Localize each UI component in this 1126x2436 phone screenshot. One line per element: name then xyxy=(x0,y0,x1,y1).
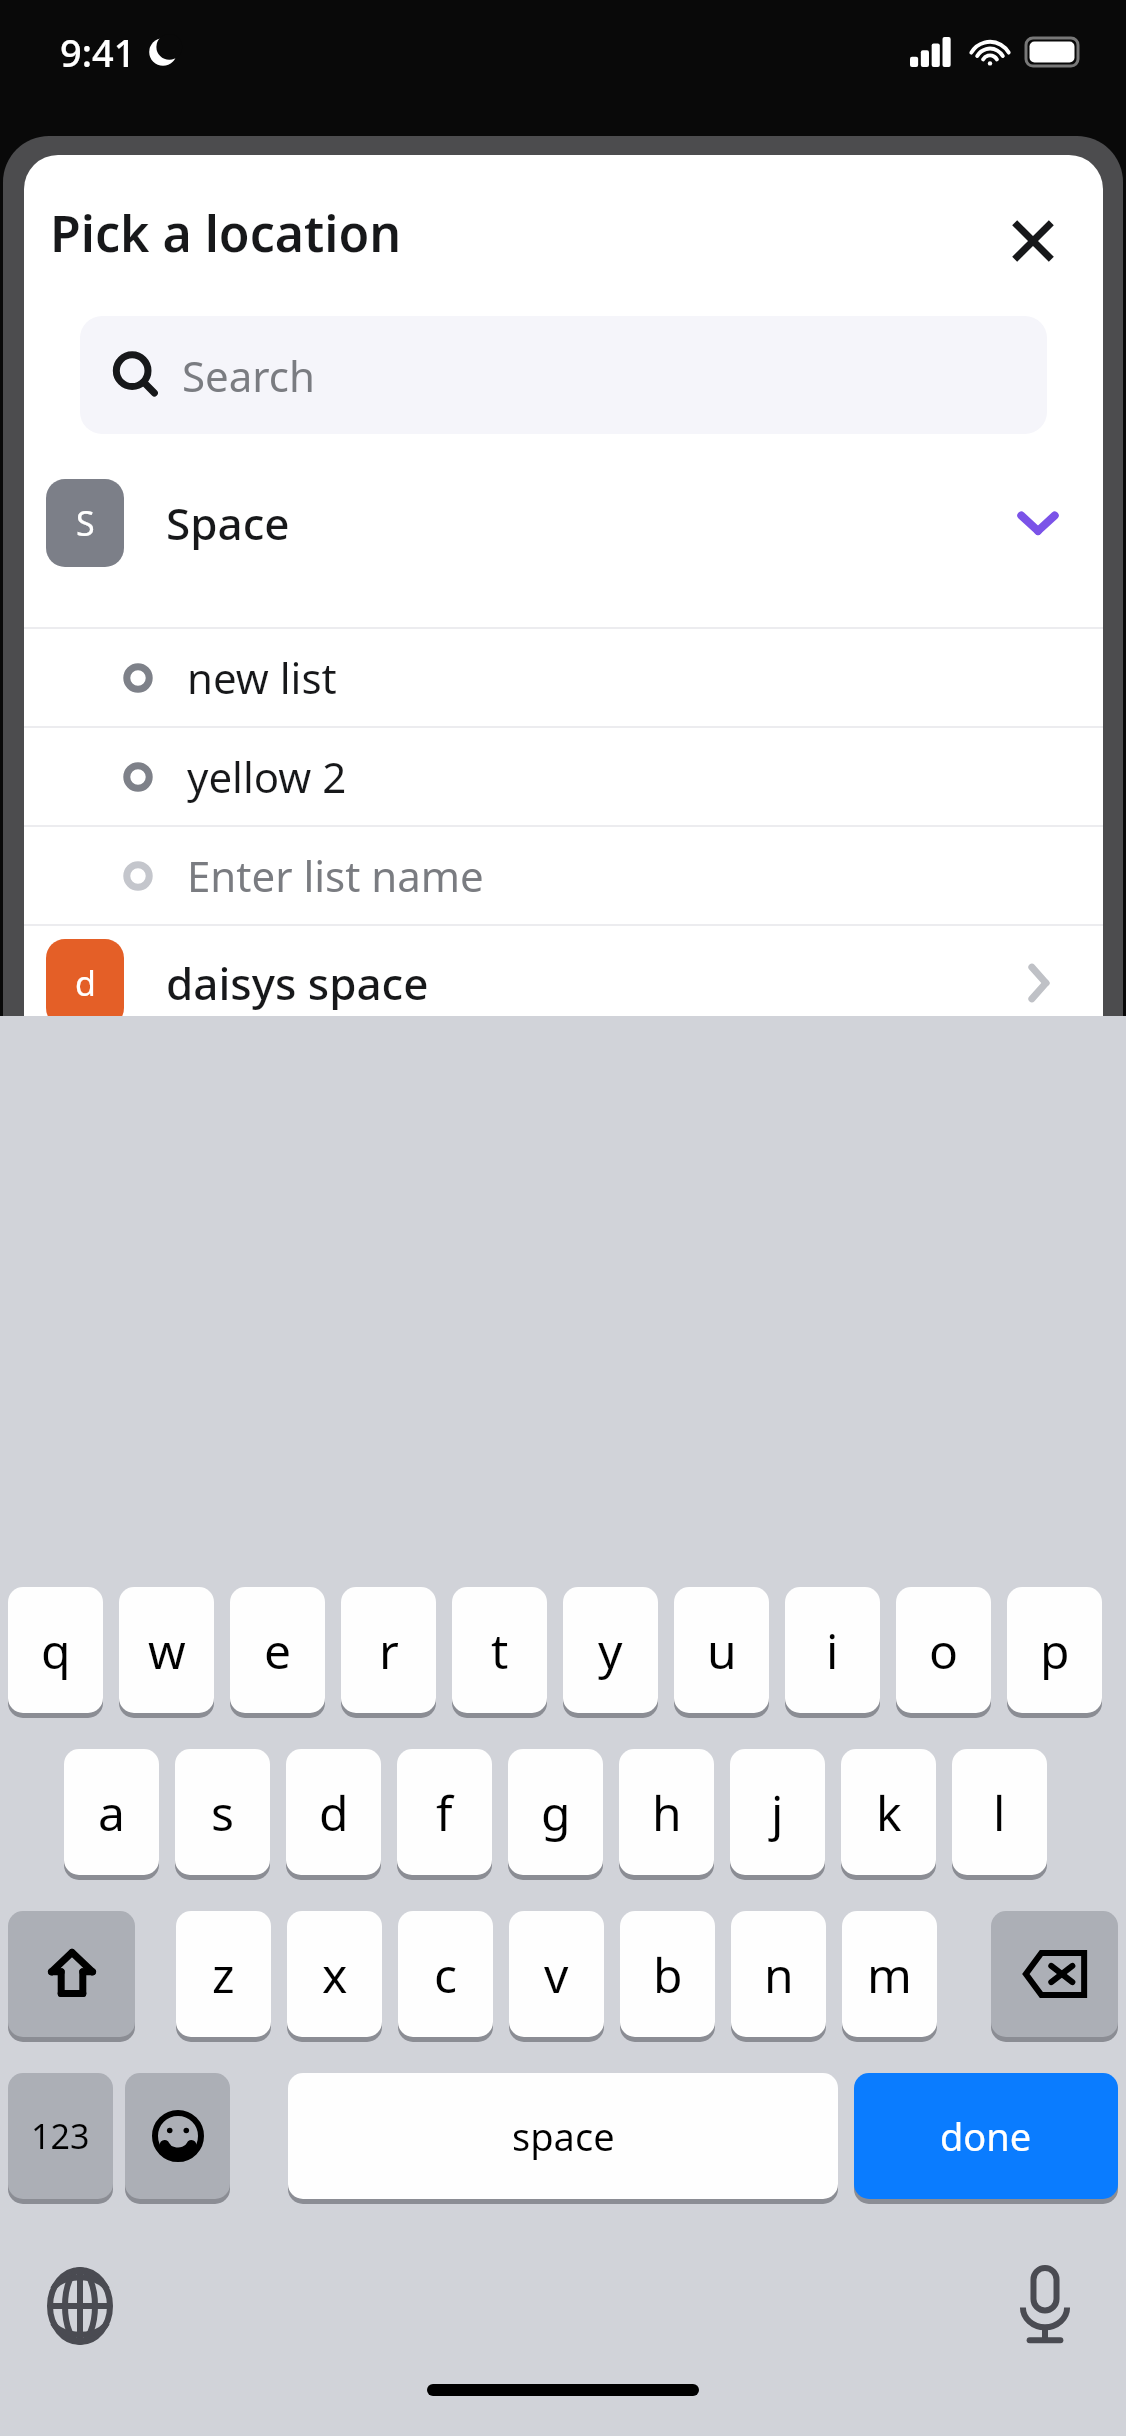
button[interactable]: e xyxy=(230,1587,325,1713)
staticText: m xyxy=(867,1942,912,2007)
button[interactable]: m xyxy=(842,1911,937,2037)
button[interactable]: Dictate xyxy=(995,2256,1095,2356)
button[interactable]: done xyxy=(854,2073,1118,2199)
staticText: w xyxy=(148,1618,186,1683)
staticText: 123 xyxy=(31,2113,90,2159)
staticText: t xyxy=(491,1618,509,1683)
staticText: k xyxy=(876,1780,902,1845)
staticText: y xyxy=(598,1618,623,1683)
staticText: d xyxy=(75,960,96,1006)
staticText: space xyxy=(512,2110,615,2162)
staticText: S xyxy=(76,500,95,546)
button[interactable]: t xyxy=(452,1587,547,1713)
button[interactable]: k xyxy=(841,1749,936,1875)
staticText: done xyxy=(940,2110,1032,2162)
staticText: a xyxy=(98,1780,125,1845)
button[interactable]: Search xyxy=(80,316,1047,434)
button[interactable]: s xyxy=(175,1749,270,1875)
button[interactable]: a xyxy=(64,1749,159,1875)
staticText: Pick a location xyxy=(50,199,402,267)
staticText: e xyxy=(264,1618,292,1683)
button[interactable]: i xyxy=(785,1587,880,1713)
staticText: yellow 2 xyxy=(187,748,347,805)
button[interactable]: w xyxy=(119,1587,214,1713)
staticText: f xyxy=(436,1780,453,1845)
button[interactable]: h xyxy=(619,1749,714,1875)
staticText: v xyxy=(544,1942,569,2007)
button[interactable]: d xyxy=(24,926,1103,1016)
button[interactable]: y xyxy=(563,1587,658,1713)
staticText: n xyxy=(764,1942,794,2007)
button[interactable]: yellow 2 xyxy=(24,728,1103,825)
button[interactable]: j xyxy=(730,1749,825,1875)
button[interactable]: Change keyboard xyxy=(30,2256,130,2356)
button[interactable]: r xyxy=(341,1587,436,1713)
button[interactable]: g xyxy=(508,1749,603,1875)
staticText: h xyxy=(652,1780,682,1845)
staticText: new list xyxy=(187,649,337,706)
staticText: j xyxy=(771,1780,784,1845)
button[interactable]: z xyxy=(176,1911,271,2037)
button[interactable]: S xyxy=(24,465,1103,581)
staticText: r xyxy=(379,1618,399,1683)
staticText: Space xyxy=(166,493,290,553)
button[interactable]: o xyxy=(896,1587,991,1713)
button[interactable]: space xyxy=(288,2073,838,2199)
staticText: g xyxy=(541,1780,571,1845)
button[interactable]: n xyxy=(731,1911,826,2037)
staticText: daisys space xyxy=(166,953,429,1013)
staticText: s xyxy=(211,1780,234,1845)
button[interactable]: x xyxy=(287,1911,382,2037)
staticText: o xyxy=(929,1618,959,1683)
staticText: Search xyxy=(182,347,315,404)
button[interactable]: c xyxy=(398,1911,493,2037)
button[interactable]: Backspace xyxy=(991,1911,1118,2037)
button[interactable]: new list xyxy=(24,629,1103,726)
staticText: x xyxy=(322,1942,348,2007)
staticText: Enter list name xyxy=(187,847,484,904)
button[interactable]: Close xyxy=(989,197,1077,285)
button[interactable]: Open daisys space xyxy=(993,938,1083,1016)
staticText: l xyxy=(993,1780,1006,1845)
staticText: b xyxy=(653,1942,683,2007)
staticText: q xyxy=(41,1618,71,1683)
button[interactable]: b xyxy=(620,1911,715,2037)
staticText: z xyxy=(212,1942,235,2007)
button[interactable]: v xyxy=(509,1911,604,2037)
button[interactable]: Emoji xyxy=(125,2073,230,2199)
button[interactable]: d xyxy=(286,1749,381,1875)
staticText: u xyxy=(707,1618,737,1683)
button[interactable]: l xyxy=(952,1749,1047,1875)
button[interactable]: Numbers xyxy=(8,2073,113,2199)
button[interactable]: Shift xyxy=(8,1911,135,2037)
button[interactable]: Collapse xyxy=(993,478,1083,568)
button[interactable]: q xyxy=(8,1587,103,1713)
button[interactable]: f xyxy=(397,1749,492,1875)
staticText: c xyxy=(434,1942,458,2007)
staticText: 9:41 xyxy=(60,26,136,78)
button[interactable]: Enter list name xyxy=(24,827,1103,924)
staticText: d xyxy=(319,1780,349,1845)
button[interactable]: u xyxy=(674,1587,769,1713)
button[interactable]: p xyxy=(1007,1587,1102,1713)
staticText: i xyxy=(826,1618,839,1683)
staticText: p xyxy=(1040,1618,1070,1683)
